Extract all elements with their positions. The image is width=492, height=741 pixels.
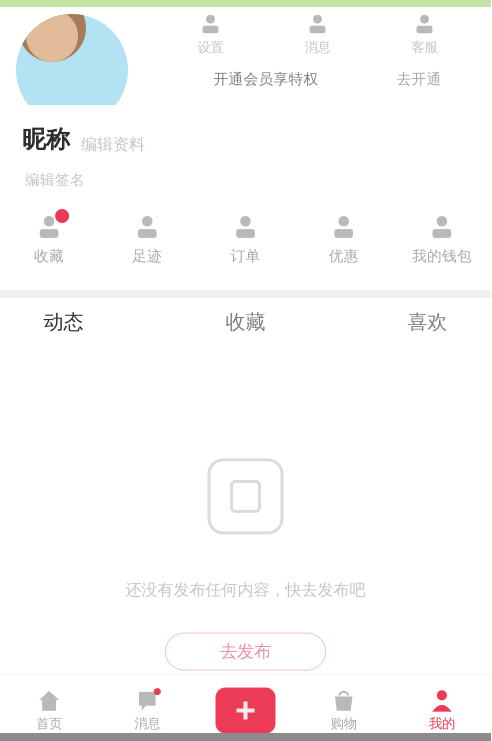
button[interactable]: 我的	[393, 689, 491, 732]
staticText: 客服	[411, 39, 437, 56]
button[interactable]: 设置	[157, 13, 264, 56]
staticText: 订单	[230, 247, 260, 265]
staticText: 优惠	[329, 247, 359, 265]
staticText: 收藏	[225, 309, 265, 335]
button[interactable]: 发布	[196, 687, 295, 733]
button[interactable]: 足迹	[98, 213, 196, 265]
staticText: 还没有发布任何内容，快去发布吧	[125, 580, 365, 600]
staticText: 喜欢	[407, 309, 447, 335]
button[interactable]: 消息	[98, 689, 196, 732]
button[interactable]: 优惠	[295, 213, 393, 265]
staticText: 消息	[134, 715, 160, 732]
staticText: 消息	[304, 39, 330, 56]
button[interactable]: 购物	[295, 689, 393, 732]
staticText: 收藏	[34, 247, 64, 265]
staticText: 编辑资料	[81, 134, 145, 155]
staticText: 去发布	[220, 641, 271, 662]
staticText: 编辑签名	[25, 170, 85, 189]
button[interactable]: 客服	[371, 13, 478, 56]
staticText: 首页	[36, 715, 62, 732]
button[interactable]: 消息	[264, 13, 371, 56]
button[interactable]: 订单	[196, 213, 295, 265]
button[interactable]: 收藏	[182, 296, 309, 348]
staticText: 足迹	[132, 247, 162, 265]
button[interactable]: 去开通	[392, 70, 446, 88]
staticText: 开通会员享特权	[213, 70, 318, 88]
staticText: 购物	[331, 715, 357, 732]
button[interactable]: 收藏	[0, 213, 98, 265]
staticText: 去开通	[396, 70, 441, 88]
staticText: 我的钱包	[412, 247, 472, 265]
staticText: 昵称	[22, 124, 70, 154]
button[interactable]: 去发布	[165, 633, 325, 670]
button[interactable]: 喜欢	[364, 296, 491, 348]
staticText: 我的	[429, 715, 455, 732]
button[interactable]: 编辑资料	[81, 134, 145, 155]
staticText: 动态	[43, 309, 83, 335]
button[interactable]: 开通会员享特权	[198, 70, 334, 88]
staticText: 设置	[197, 39, 223, 56]
button[interactable]: 动态	[0, 296, 127, 348]
button[interactable]: 首页	[0, 689, 98, 732]
button[interactable]: 我的钱包	[393, 213, 491, 265]
